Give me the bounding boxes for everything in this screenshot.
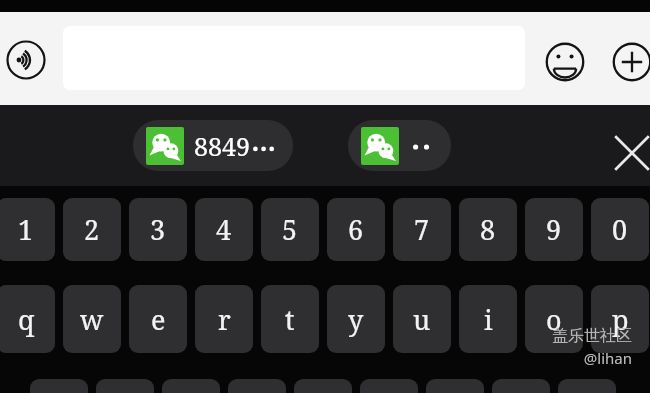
button[interactable]	[162, 379, 220, 393]
button[interactable]: p	[591, 285, 649, 353]
button[interactable]: Emoji	[541, 38, 589, 86]
button[interactable]	[30, 379, 88, 393]
button[interactable]: 8	[459, 198, 517, 261]
staticText: e	[151, 301, 166, 338]
button[interactable]: o	[525, 285, 583, 353]
staticText: 2	[84, 211, 100, 248]
staticText: o	[546, 301, 562, 338]
button[interactable]: 1	[0, 198, 55, 261]
staticText: r	[218, 301, 231, 338]
button[interactable]	[348, 120, 451, 171]
button[interactable]: 0	[591, 198, 649, 261]
button[interactable]: e	[129, 285, 187, 353]
staticText: 5	[282, 211, 298, 248]
button[interactable]	[294, 379, 352, 393]
staticText: 8849	[194, 129, 250, 163]
staticText: 4	[216, 211, 232, 248]
button[interactable]	[228, 379, 286, 393]
button[interactable]: q	[0, 285, 55, 353]
staticText: 3	[150, 211, 166, 248]
staticText: 8	[480, 211, 496, 248]
button[interactable]: Close	[608, 129, 650, 177]
staticText: @lihan	[583, 348, 632, 368]
button[interactable]	[492, 379, 550, 393]
button[interactable]: 3	[129, 198, 187, 261]
staticText: i	[484, 301, 493, 338]
staticText: q	[18, 301, 35, 338]
staticText: 6	[348, 211, 364, 248]
button[interactable]: More	[608, 38, 650, 86]
staticText: t	[285, 301, 295, 338]
button[interactable]: i	[459, 285, 517, 353]
staticText: 7	[414, 211, 430, 248]
button[interactable]: 2	[63, 198, 121, 261]
staticText: p	[612, 301, 629, 338]
button[interactable]: w	[63, 285, 121, 353]
button[interactable]: y	[327, 285, 385, 353]
button[interactable]: Voice input	[4, 38, 48, 82]
button[interactable]: 6	[327, 198, 385, 261]
button[interactable]: r	[195, 285, 253, 353]
button[interactable]: t	[261, 285, 319, 353]
staticText: 盖乐世社区	[552, 326, 632, 346]
staticText: 9	[546, 211, 562, 248]
staticText: 1	[18, 211, 34, 248]
button[interactable]: 9	[525, 198, 583, 261]
staticText: 0	[612, 211, 628, 248]
button[interactable]	[96, 379, 154, 393]
button[interactable]: 5	[261, 198, 319, 261]
button[interactable]: u	[393, 285, 451, 353]
button[interactable]: 7	[393, 198, 451, 261]
button[interactable]: 4	[195, 198, 253, 261]
staticText: u	[413, 301, 431, 338]
staticText: y	[348, 301, 364, 338]
button[interactable]: 8849	[133, 120, 293, 171]
button[interactable]	[558, 379, 616, 393]
button[interactable]	[360, 379, 418, 393]
button[interactable]	[426, 379, 484, 393]
staticText: w	[80, 301, 104, 338]
